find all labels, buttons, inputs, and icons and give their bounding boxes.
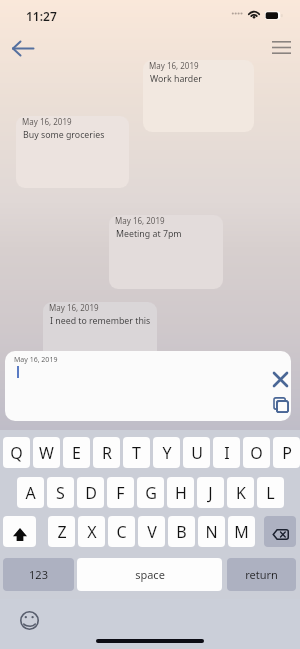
button[interactable]: W <box>33 437 60 468</box>
staticText: J <box>208 482 213 504</box>
button[interactable]: T <box>123 437 150 468</box>
button[interactable]: E <box>63 437 90 468</box>
button[interactable]: May 16, 2019 <box>16 116 129 188</box>
button[interactable]: Z <box>48 516 75 547</box>
button[interactable]: C <box>108 516 135 547</box>
staticText: W <box>39 442 54 464</box>
button[interactable]: M <box>228 516 255 547</box>
button[interactable]: R <box>93 437 120 468</box>
button[interactable]: Y <box>153 437 180 468</box>
button[interactable]: May 16, 2019 <box>109 215 223 289</box>
button[interactable]: S <box>47 477 74 508</box>
button[interactable]: 123 <box>3 558 74 591</box>
staticText: 11:27 <box>26 8 57 24</box>
staticText: I <box>224 442 230 464</box>
button[interactable]: I <box>213 437 240 468</box>
button[interactable]: V <box>138 516 165 547</box>
staticText: R <box>102 442 112 464</box>
staticText: Meeting at 7pm <box>116 228 182 240</box>
staticText: Q <box>10 442 23 464</box>
staticText: May 16, 2019 <box>14 355 58 365</box>
staticText: A <box>25 482 36 504</box>
button[interactable]: J <box>197 477 224 508</box>
staticText: I need to remember this <box>50 315 151 327</box>
button[interactable]: Back <box>7 36 39 60</box>
staticText: Work harder <box>150 73 202 85</box>
staticText: F <box>116 482 125 504</box>
staticText: V <box>147 521 157 543</box>
button[interactable]: return <box>227 558 296 591</box>
staticText: May 16, 2019 <box>49 302 99 313</box>
staticText: May 16, 2019 <box>22 116 72 127</box>
staticText: G <box>145 482 157 504</box>
button[interactable]: G <box>137 477 164 508</box>
staticText: space <box>135 567 165 582</box>
button[interactable]: Backspace <box>264 516 296 547</box>
button[interactable]: Shift <box>3 516 36 547</box>
button[interactable]: May 16, 2019 <box>5 351 291 421</box>
staticText: L <box>266 482 275 504</box>
button[interactable]: space <box>77 558 222 591</box>
staticText: May 16, 2019 <box>149 60 199 71</box>
button[interactable]: Copy <box>263 389 291 419</box>
staticText: P <box>282 442 292 464</box>
button[interactable]: L <box>257 477 284 508</box>
staticText: S <box>56 482 65 504</box>
button[interactable]: Close <box>263 364 291 394</box>
staticText: B <box>176 521 187 543</box>
staticText: May 16, 2019 <box>115 215 165 226</box>
button[interactable]: U <box>183 437 210 468</box>
button[interactable]: Menu <box>266 35 296 60</box>
staticText: U <box>191 442 203 464</box>
button[interactable]: F <box>107 477 134 508</box>
button[interactable]: O <box>243 437 270 468</box>
button[interactable]: H <box>167 477 194 508</box>
staticText: Z <box>57 521 67 543</box>
button[interactable]: B <box>168 516 195 547</box>
staticText: Y <box>162 442 172 464</box>
button[interactable]: May 16, 2019 <box>43 302 157 374</box>
button[interactable]: Q <box>3 437 30 468</box>
staticText: N <box>205 521 218 543</box>
staticText: T <box>132 442 141 464</box>
button[interactable]: D <box>77 477 104 508</box>
staticText: K <box>236 482 246 504</box>
staticText: X <box>87 521 97 543</box>
button[interactable]: N <box>198 516 225 547</box>
button[interactable]: X <box>78 516 105 547</box>
button[interactable]: P <box>273 437 300 468</box>
button[interactable]: K <box>227 477 254 508</box>
staticText: M <box>234 521 249 543</box>
staticText: E <box>72 442 81 464</box>
staticText: O <box>250 442 263 464</box>
button[interactable]: May 16, 2019 <box>143 60 254 132</box>
button[interactable]: A <box>17 477 44 508</box>
staticText: H <box>175 482 187 504</box>
staticText: 123 <box>29 567 48 582</box>
staticText: return <box>245 567 278 582</box>
staticText: C <box>116 521 127 543</box>
staticText: D <box>85 482 97 504</box>
button[interactable]: Emoji <box>15 605 43 633</box>
staticText: Buy some groceries <box>23 129 105 141</box>
